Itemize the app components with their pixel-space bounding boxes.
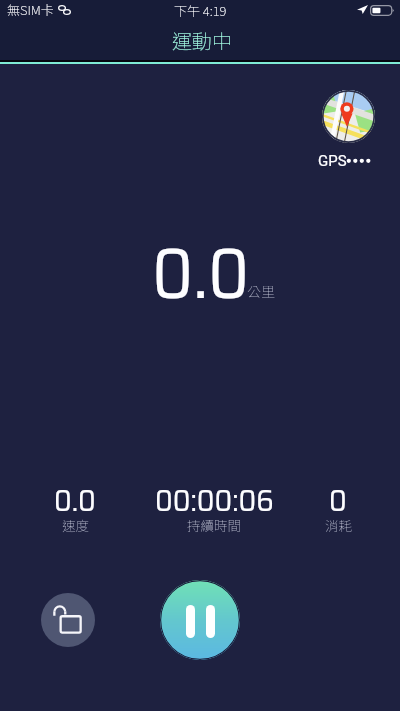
button[interactable]: GPS signal: [310, 150, 380, 172]
staticText: 0.0: [152, 217, 250, 329]
button[interactable]: Unlock screen: [41, 593, 95, 647]
staticText: 消耗: [325, 515, 352, 535]
staticText: 公里: [247, 281, 275, 301]
button[interactable]: 0: [268, 476, 400, 538]
staticText: 運動中: [172, 26, 232, 55]
button[interactable]: 0.0: [5, 476, 145, 538]
staticText: 無SIM卡: [7, 0, 54, 19]
button[interactable]: 00:00:06: [144, 476, 284, 538]
staticText: GPS: [318, 152, 347, 170]
staticText: 下午 4:19: [174, 1, 227, 20]
staticText: 0: [329, 476, 347, 524]
staticText: 持續時間: [187, 515, 241, 535]
button[interactable]: Pause workout: [160, 580, 240, 660]
staticText: 00:00:06: [155, 476, 274, 524]
button[interactable]: GPS map: [322, 90, 375, 143]
staticText: 速度: [62, 515, 89, 535]
staticText: 0.0: [54, 476, 96, 524]
